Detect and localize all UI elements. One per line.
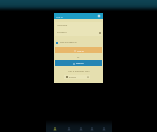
button[interactable]: Log in	[55, 47, 102, 53]
button[interactable]: Username	[55, 22, 102, 29]
staticText: Password	[57, 31, 67, 34]
button[interactable]: Tab 3	[77, 125, 85, 132]
button[interactable]: Tab 2	[65, 125, 73, 132]
staticText: Not a member yet?	[68, 69, 90, 72]
staticText: Keep me logged in	[60, 41, 77, 44]
button[interactable]: Tab 5	[100, 125, 108, 132]
staticText: Username	[57, 24, 68, 27]
staticText: Log in	[77, 49, 84, 52]
button[interactable]: Log in	[54, 13, 103, 19]
button[interactable]: Register	[55, 60, 102, 66]
button[interactable]: Tab 4	[88, 125, 96, 132]
button[interactable]: English	[64, 75, 90, 79]
button[interactable]: Show password	[97, 30, 102, 35]
button[interactable]: Close	[96, 13, 102, 19]
staticText: or	[77, 55, 80, 58]
staticText: English	[69, 76, 77, 79]
button[interactable]: Password	[55, 29, 102, 36]
staticText: Log in	[56, 15, 63, 18]
button[interactable]: Keep me logged in	[56, 41, 102, 44]
staticText: Register	[76, 62, 84, 65]
button[interactable]: Tab 1	[51, 125, 59, 132]
